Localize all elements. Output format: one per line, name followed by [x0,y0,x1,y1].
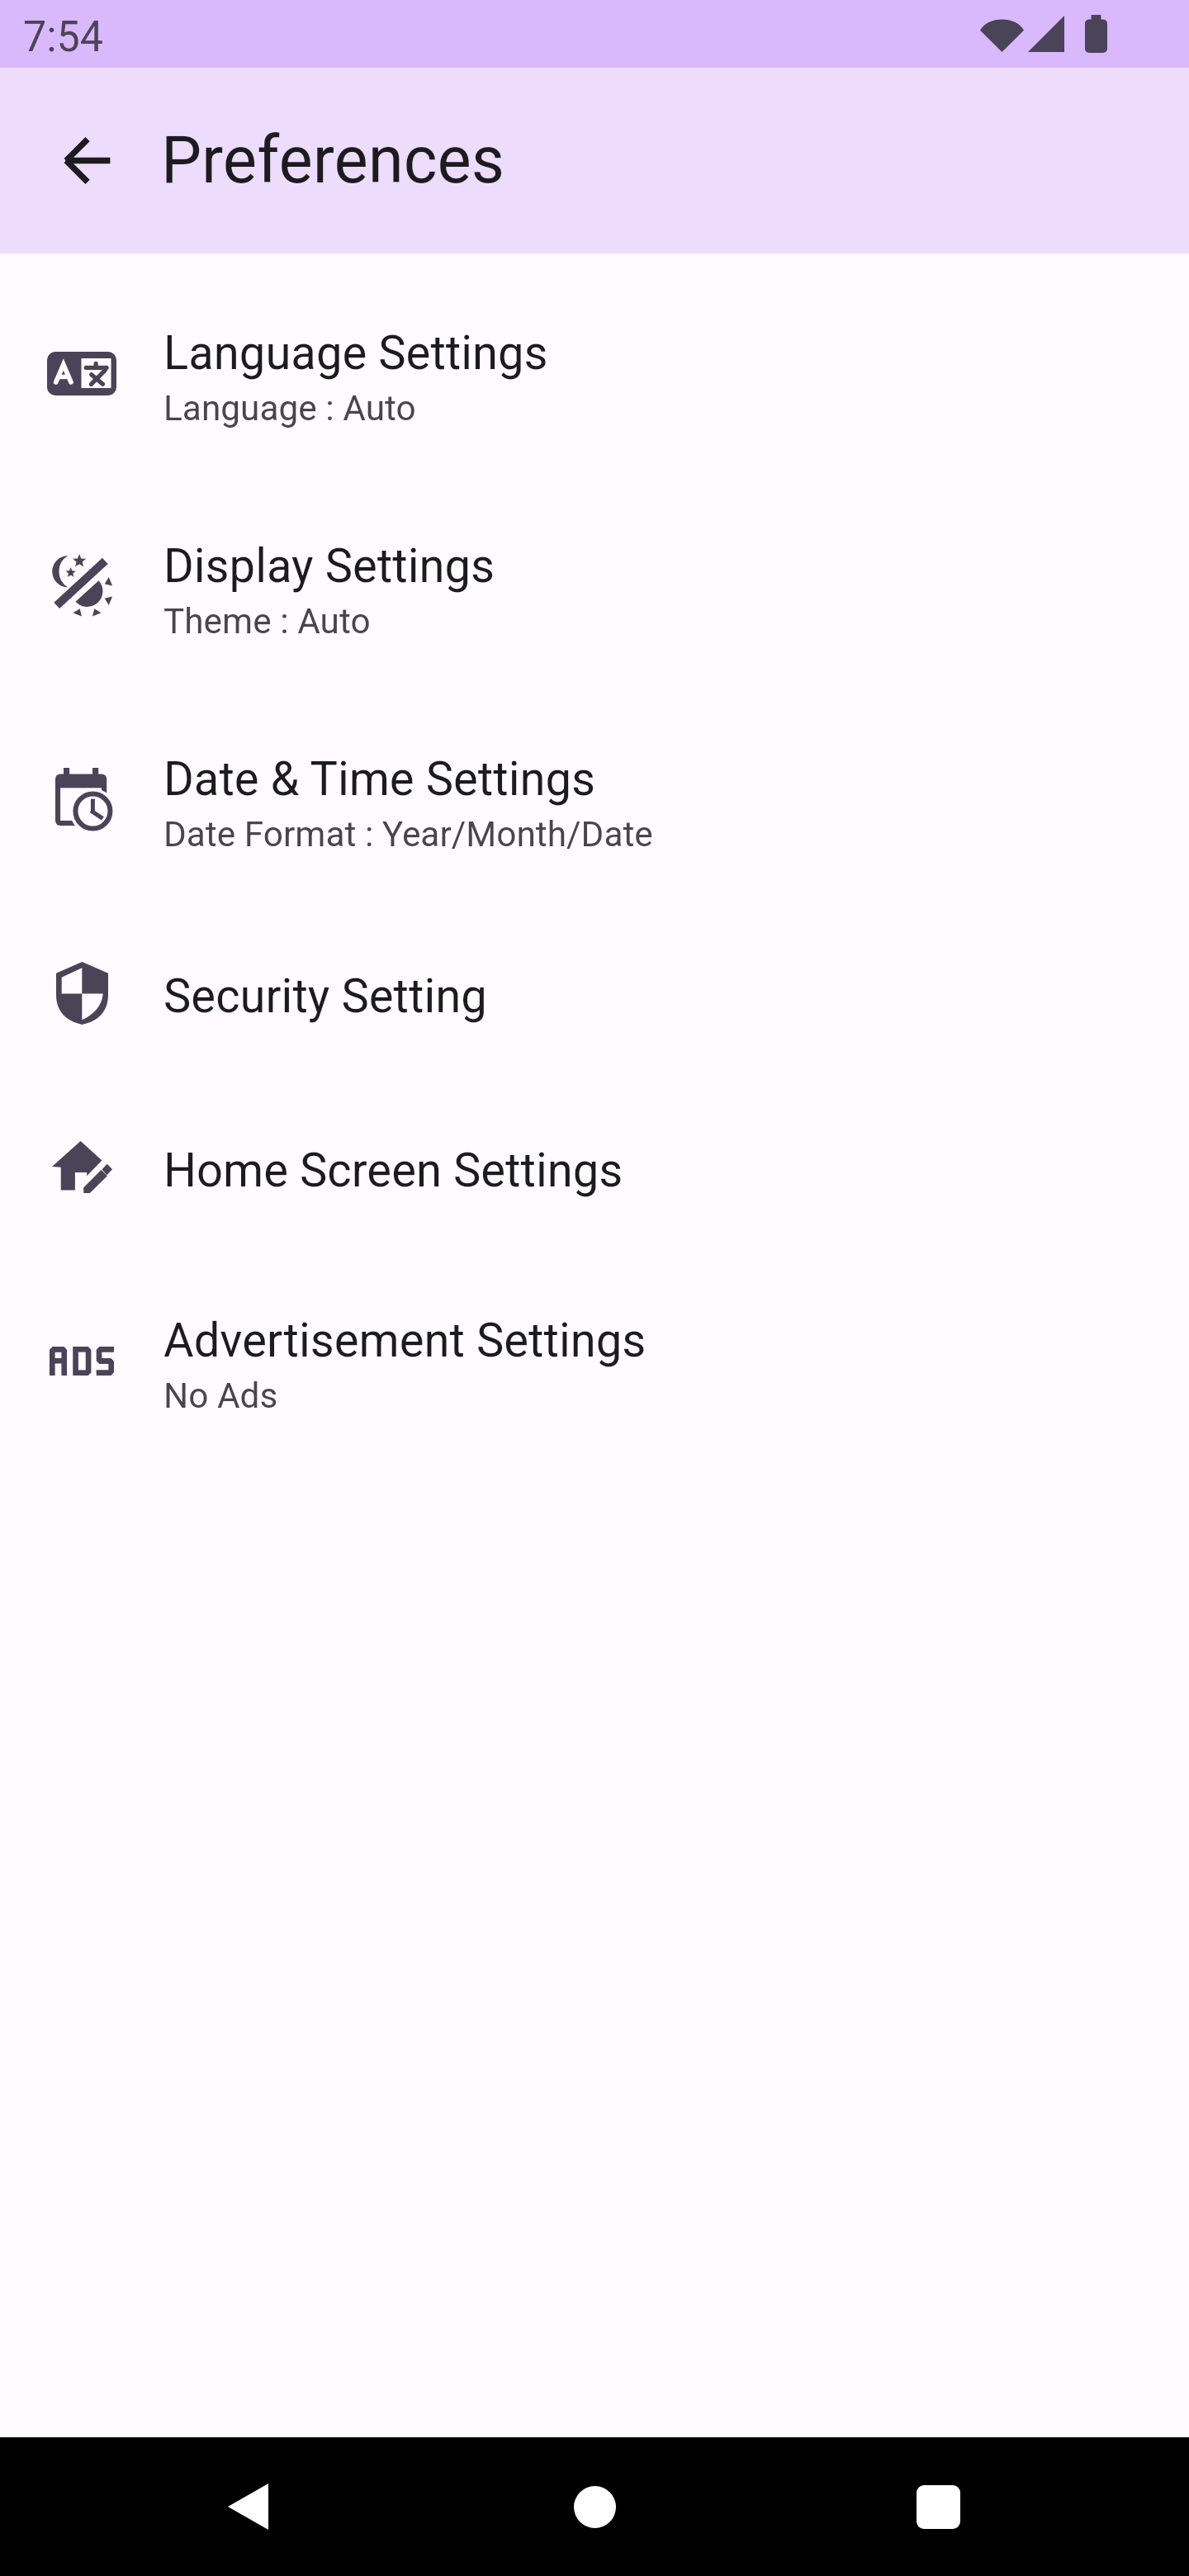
staticText: Preferences [161,122,504,199]
button[interactable]: Back [178,2437,317,2576]
staticText: Language : Auto [163,387,416,429]
button[interactable]: Security Setting [0,906,1189,1080]
staticText: Date Format : Year/Month/Date [163,813,653,855]
button[interactable]: Date & Time Settings [0,693,1189,906]
button[interactable]: Language Settings [0,267,1189,480]
staticText: Language Settings [163,324,548,381]
staticText: Advertisement Settings [163,1311,647,1368]
button[interactable]: Home [525,2437,664,2576]
button[interactable]: Home Screen Settings [0,1080,1189,1254]
staticText: Home Screen Settings [163,1141,623,1198]
button[interactable]: Advertisement Settings [0,1254,1189,1467]
button[interactable]: Recent apps [869,2437,1007,2576]
staticText: No Ads [163,1375,278,1416]
button[interactable]: Navigate up [0,68,161,253]
staticText: Date & Time Settings [163,750,595,807]
staticText: 7:54 [23,12,104,62]
staticText: Security Setting [163,967,487,1024]
staticText: Theme : Auto [163,600,371,642]
button[interactable]: Display Settings [0,480,1189,693]
staticText: Display Settings [163,537,495,594]
